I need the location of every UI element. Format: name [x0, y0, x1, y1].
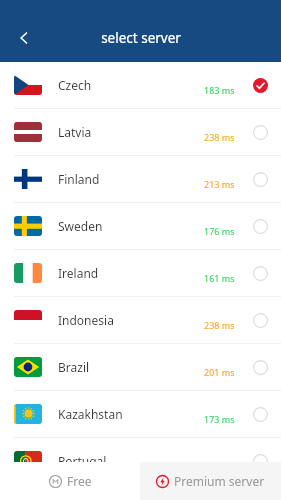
button[interactable]: Ireland — [0, 250, 281, 296]
staticText: Premium server — [174, 473, 265, 489]
button[interactable]: Portugal — [0, 438, 281, 484]
staticText: 238 ms — [204, 319, 235, 331]
staticText: Indonesia — [58, 312, 114, 328]
button[interactable]: Finland — [0, 156, 281, 202]
button[interactable]: Free — [0, 462, 140, 500]
button[interactable]: Kazakhstan — [0, 391, 281, 437]
staticText: Brazil — [58, 359, 90, 375]
staticText: 190 ms — [204, 460, 235, 472]
button[interactable]: Indonesia — [0, 297, 281, 343]
button[interactable]: Back — [4, 18, 44, 58]
staticText: Finland — [58, 171, 100, 187]
staticText: select server — [101, 29, 181, 47]
staticText: Ireland — [58, 265, 99, 281]
staticText: 238 ms — [204, 131, 235, 143]
staticText: Latvia — [58, 124, 92, 140]
staticText: 213 ms — [204, 178, 235, 190]
staticText: Free — [67, 473, 92, 489]
staticText: Portugal — [58, 453, 107, 469]
staticText: 176 ms — [204, 225, 235, 237]
staticText: 173 ms — [204, 413, 235, 425]
button[interactable]: Premium server — [140, 462, 281, 500]
button[interactable]: Sweden — [0, 203, 281, 249]
button[interactable]: Czech — [0, 62, 281, 108]
staticText: Sweden — [58, 218, 103, 234]
staticText: Kazakhstan — [58, 406, 123, 422]
button[interactable]: Latvia — [0, 109, 281, 155]
staticText: 183 ms — [204, 84, 235, 96]
button[interactable]: Brazil — [0, 344, 281, 390]
staticText: 201 ms — [204, 366, 235, 378]
staticText: 161 ms — [204, 272, 235, 284]
staticText: Czech — [58, 77, 92, 93]
